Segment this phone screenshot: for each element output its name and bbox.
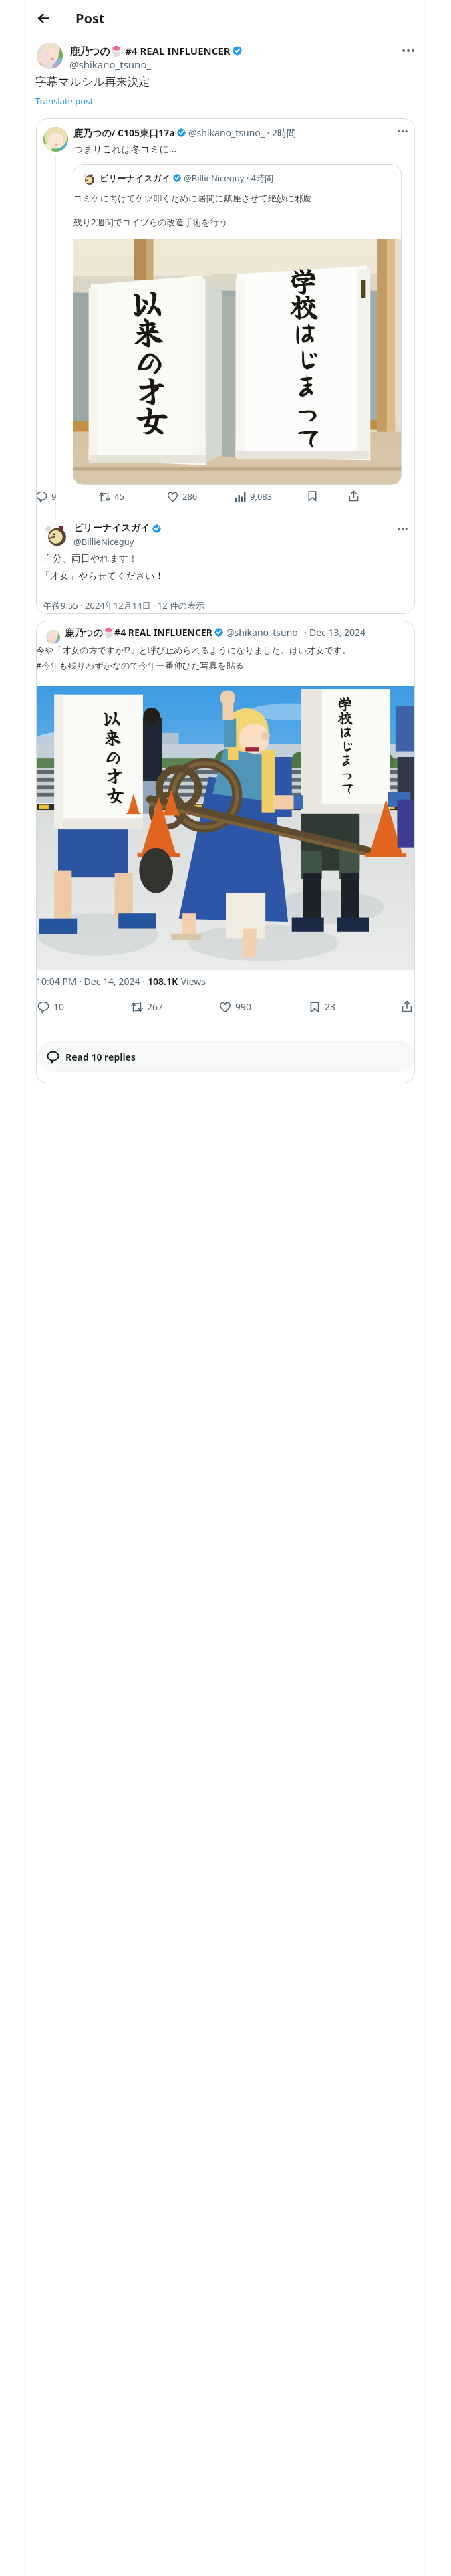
button[interactable]: Read 10 replies bbox=[37, 1041, 414, 1072]
staticText: @shikano_tsuno_ · Dec 13, 2024 bbox=[226, 626, 365, 639]
staticText: 267 bbox=[147, 1000, 164, 1013]
staticText: っ bbox=[293, 389, 322, 430]
button[interactable]: Bookmark bbox=[307, 490, 318, 502]
button[interactable]: Back bbox=[32, 7, 55, 29]
staticText: の bbox=[104, 743, 123, 770]
staticText: 以 bbox=[102, 704, 121, 731]
staticText: @BillieNiceguy bbox=[73, 536, 134, 548]
staticText: @shikano_tsuno_ · 2時間 bbox=[188, 126, 297, 139]
button[interactable]: Share bbox=[348, 490, 359, 502]
staticText: @shikano_tsuno_ bbox=[69, 58, 152, 71]
staticText: じ bbox=[291, 337, 320, 378]
staticText: つまりこれは冬コミに... bbox=[73, 142, 177, 155]
button[interactable]: More options bbox=[394, 122, 411, 140]
staticText: て bbox=[294, 415, 323, 456]
staticText: Read 10 replies bbox=[65, 1051, 136, 1063]
button[interactable]: ビリーナイスガイ bbox=[73, 164, 402, 485]
staticText: 校 bbox=[290, 285, 318, 325]
staticText: 鹿乃つの🍧 #4 REAL INFLUENCER bbox=[69, 44, 231, 58]
staticText: ま bbox=[292, 363, 321, 404]
staticText: 自分、両日やれます！ bbox=[43, 553, 138, 565]
staticText: 990 bbox=[235, 1000, 252, 1013]
staticText: 来 bbox=[131, 307, 165, 354]
button[interactable]: 9,083 bbox=[235, 490, 273, 502]
button[interactable]: 23 bbox=[309, 1000, 336, 1013]
button[interactable]: 990 bbox=[219, 1000, 252, 1013]
staticText: 23 bbox=[325, 1000, 336, 1013]
staticText: 「才女」やらせてください！ bbox=[41, 570, 164, 582]
staticText: 才 bbox=[105, 762, 124, 789]
staticText: 学 bbox=[289, 259, 317, 299]
staticText: 45 bbox=[114, 490, 124, 502]
staticText: ビリーナイスガイ bbox=[73, 522, 150, 534]
staticText: 残り2週間でコイツらの改造手術を行う bbox=[73, 216, 229, 228]
staticText: Views bbox=[178, 975, 206, 988]
button[interactable]: 45 bbox=[99, 490, 124, 502]
staticText: 来 bbox=[103, 723, 122, 750]
staticText: 午後9:55 · 2024年12月14日 · 12 件の表示 bbox=[43, 599, 205, 611]
staticText: コミケに向けてケツ叩くために居間に鎮座させて絶妙に邪魔 bbox=[73, 193, 312, 203]
button[interactable]: 9 bbox=[36, 490, 57, 502]
staticText: 9 bbox=[51, 490, 57, 502]
staticText: 鹿乃つの🍧#4 REAL INFLUENCER bbox=[65, 626, 212, 639]
staticText: 9,083 bbox=[250, 490, 273, 502]
staticText: 286 bbox=[182, 490, 198, 502]
staticText: て bbox=[340, 776, 356, 798]
staticText: 今や「才女の方ですか!?」と呼び止められるようになりました。はい才女です。 bbox=[36, 644, 351, 656]
staticText: 女 bbox=[106, 781, 125, 808]
staticText: 108.1K bbox=[148, 975, 178, 988]
staticText: Post bbox=[76, 9, 105, 27]
button[interactable]: Translate post bbox=[35, 95, 94, 107]
staticText: 鹿乃つの/ C105東口17a bbox=[73, 126, 175, 139]
staticText: は bbox=[338, 720, 354, 742]
staticText: 以 bbox=[129, 277, 163, 325]
staticText: 学 bbox=[337, 692, 353, 714]
button[interactable]: 286 bbox=[167, 490, 198, 502]
staticText: っ bbox=[339, 762, 355, 784]
staticText: 字幕マルシル再来決定 bbox=[35, 75, 150, 89]
staticText: ビリーナイスガイ bbox=[100, 173, 171, 183]
staticText: 10:04 PM · Dec 14, 2024 · bbox=[36, 975, 148, 988]
button[interactable]: 鹿乃つの/ C105東口17a bbox=[36, 118, 415, 614]
staticText: は bbox=[290, 311, 319, 352]
button[interactable]: 10 bbox=[37, 1000, 65, 1013]
staticText: 校 bbox=[337, 706, 354, 728]
button[interactable]: 鹿乃つの🍧#4 REAL INFLUENCER bbox=[36, 621, 415, 1083]
button[interactable]: 267 bbox=[131, 1000, 164, 1013]
staticText: 10 bbox=[53, 1000, 65, 1013]
button[interactable] bbox=[37, 43, 63, 69]
button[interactable]: More options bbox=[394, 520, 411, 537]
staticText: @BillieNiceguy · 4時間 bbox=[184, 172, 274, 184]
staticText: #今年も残りわずかなので今年一番伸びた写真を貼る bbox=[36, 659, 245, 671]
button[interactable]: More options bbox=[398, 40, 419, 62]
button[interactable]: Share bbox=[401, 1000, 413, 1012]
staticText: 才 bbox=[134, 366, 168, 413]
staticText: 女 bbox=[136, 395, 169, 442]
staticText: ま bbox=[339, 748, 355, 770]
staticText: の bbox=[132, 336, 166, 383]
staticText: じ bbox=[338, 734, 355, 756]
